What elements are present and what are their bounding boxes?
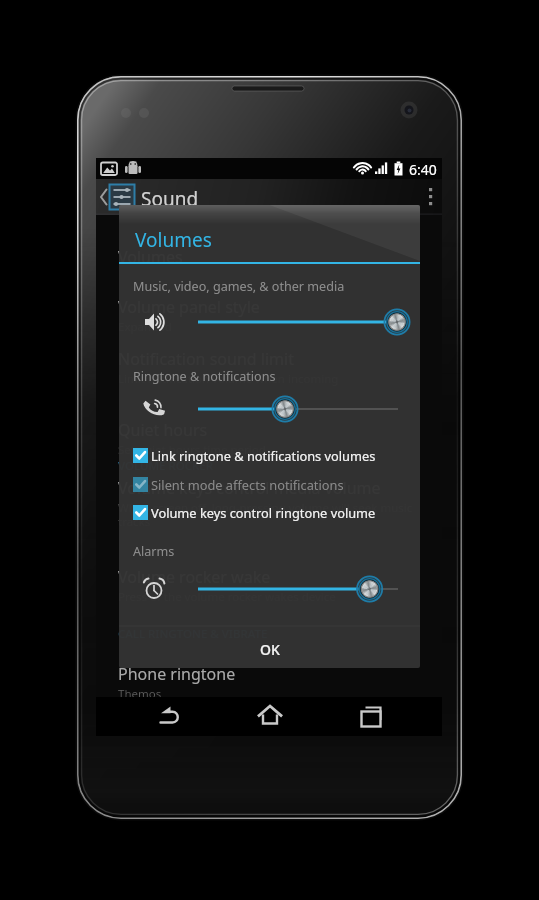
staticText: Link ringtone & notifications volumes <box>151 447 376 464</box>
staticText: VOLUME ROCKER <box>118 458 213 474</box>
button[interactable]: OK <box>119 629 420 668</box>
staticText: Set quiet hours time period <box>118 442 266 458</box>
staticText: Volumes <box>118 246 183 268</box>
button[interactable]: Back <box>149 697 191 735</box>
staticText: Notification sound limit <box>118 348 294 370</box>
button[interactable]: Phone ringtone <box>118 663 418 702</box>
staticText: Alarms <box>133 543 175 560</box>
button[interactable]: Volumes <box>118 246 418 268</box>
staticText: Press of the volume rocker wakes device <box>118 589 336 605</box>
staticText: When screen off, long-pressing volume wi… <box>118 500 418 529</box>
button[interactable]: Silent mode affects notifications <box>119 470 420 498</box>
staticText: Sound <box>141 186 199 212</box>
button[interactable]: Notification sound limit <box>118 348 418 387</box>
button[interactable]: Volume rocker wake <box>118 566 418 605</box>
button[interactable]: Recent apps <box>350 697 392 735</box>
button[interactable]: Volume keys control media volume <box>118 477 418 529</box>
staticText: Volume rocker wake <box>118 566 271 588</box>
button[interactable]: Home <box>249 697 291 735</box>
staticText: Silent mode affects notifications <box>151 476 344 493</box>
button[interactable]: Volume slider <box>119 305 420 339</box>
staticText: Music, video, games, & other media <box>133 278 345 295</box>
staticText: Ringtone & notifications <box>133 368 276 385</box>
button[interactable]: Volume keys control ringtone volume <box>119 498 420 526</box>
staticText: Volume keys control ringtone volume <box>151 504 376 521</box>
staticText: Phone ringtone <box>118 663 236 685</box>
button[interactable]: Quiet hours <box>118 419 418 458</box>
button[interactable]: Link ringtone & notifications volumes <box>119 441 420 469</box>
staticText: CALL RINGTONE & VIBRATE <box>118 626 268 642</box>
staticText: Expanded <box>118 319 172 335</box>
staticText: 6:40 <box>409 160 437 179</box>
button[interactable]: Volume slider <box>119 572 420 606</box>
button[interactable]: Volume slider <box>119 392 420 426</box>
staticText: Quiet hours <box>118 419 208 441</box>
staticText: Volumes <box>135 227 212 253</box>
staticText: Limit notification volume when incoming <box>118 371 339 387</box>
button[interactable]: Volume panel style <box>118 296 418 335</box>
staticText: Themos <box>118 686 162 702</box>
staticText: OK <box>260 640 280 659</box>
staticText: Volume keys control media volume <box>118 477 381 499</box>
staticText: Volume panel style <box>118 296 260 318</box>
